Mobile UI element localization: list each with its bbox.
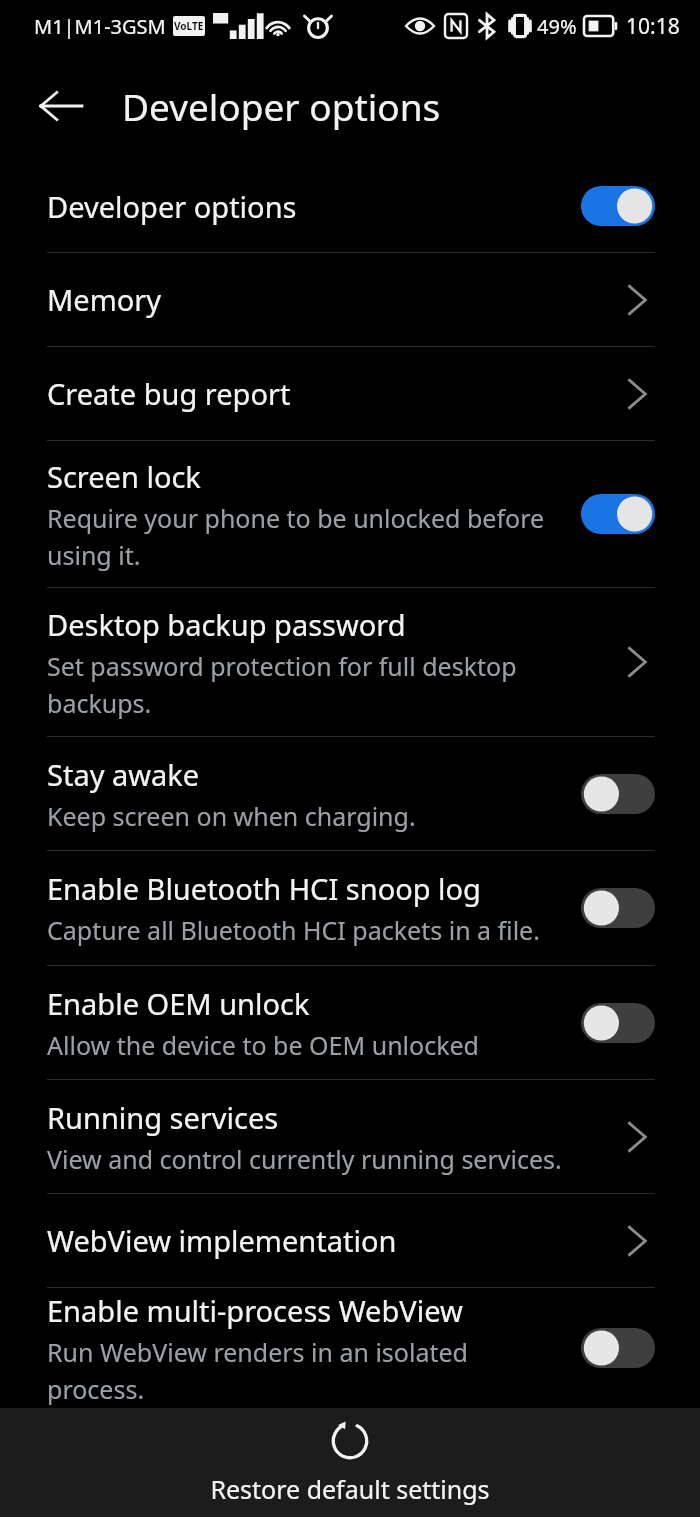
staticText: Desktop backup password [47, 605, 406, 644]
staticText: Memory [47, 280, 162, 319]
staticText: WebView implementation [47, 1221, 397, 1260]
staticText: Require your phone to be unlocked before… [47, 501, 567, 572]
staticText: 49% [537, 13, 577, 40]
button[interactable]: Off [581, 774, 655, 814]
staticText: Enable Bluetooth HCI snoop log [47, 869, 481, 908]
staticText: Screen lock [47, 457, 201, 496]
staticText: View and control currently running servi… [47, 1142, 562, 1176]
staticText: Keep screen on when charging. [47, 799, 416, 833]
staticText: Developer options [122, 81, 441, 131]
button[interactable]: Screen lock [0, 441, 700, 587]
button[interactable]: On [581, 494, 655, 534]
staticText: Developer options [47, 187, 297, 226]
button[interactable]: Off [581, 1003, 655, 1043]
staticText: VoLTE [174, 19, 204, 33]
button[interactable]: Enable Bluetooth HCI snoop log [0, 851, 700, 965]
staticText: Enable multi-process WebView [47, 1291, 463, 1330]
staticText: Stay awake [47, 755, 200, 794]
staticText: Run WebView renders in an isolated proce… [47, 1335, 567, 1406]
button[interactable]: Developer options [0, 160, 700, 252]
staticText: Allow the device to be OEM unlocked [47, 1028, 479, 1062]
button[interactable]: Restore default settings [0, 1408, 700, 1517]
staticText: 10:18 [626, 12, 680, 41]
staticText: Restore default settings [210, 1472, 490, 1506]
button[interactable]: Stay awake [0, 737, 700, 850]
button[interactable]: On [581, 186, 655, 226]
button[interactable]: Enable multi-process WebView [0, 1288, 700, 1408]
button[interactable]: WebView implementation [0, 1194, 700, 1287]
staticText: Create bug report [47, 374, 291, 413]
button[interactable]: Back [32, 77, 90, 135]
button[interactable]: Enable OEM unlock [0, 966, 700, 1079]
button[interactable]: Off [581, 1328, 655, 1368]
staticText: Enable OEM unlock [47, 984, 310, 1023]
button[interactable]: Desktop backup password [0, 588, 700, 736]
staticText: Set password protection for full desktop… [47, 649, 605, 720]
staticText: Running services [47, 1098, 279, 1137]
staticText: Capture all Bluetooth HCI packets in a f… [47, 913, 540, 947]
button[interactable]: Off [581, 888, 655, 928]
button[interactable]: Create bug report [0, 347, 700, 440]
staticText: M1|M1-3GSM [34, 13, 166, 40]
button[interactable]: Memory [0, 253, 700, 346]
button[interactable]: Running services [0, 1080, 700, 1193]
